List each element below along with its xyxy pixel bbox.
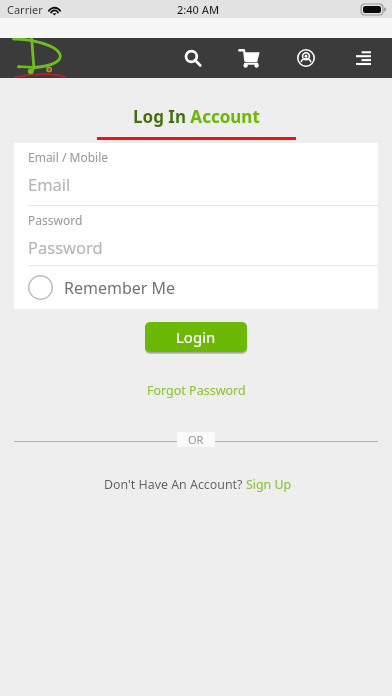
button[interactable]: Cart [230,39,268,77]
staticText: 2:40 AM [177,2,220,17]
staticText: Carrier [7,2,43,17]
button[interactable]: Menu [344,39,382,77]
staticText: Forgot Password [147,382,246,399]
staticText: Login [176,327,216,347]
staticText: Password [28,236,103,258]
button[interactable]: Account [287,39,325,77]
button[interactable]: Sign Up [246,476,292,493]
staticText: Email [28,173,71,195]
staticText: Password [28,212,83,228]
button[interactable]: Login [145,322,247,352]
staticText: Email / Mobile [28,149,109,165]
staticText: Sign Up [246,476,292,493]
staticText: Don't Have An Account? [104,476,246,493]
staticText: OR [188,432,204,447]
button[interactable]: Search [174,39,212,77]
button[interactable]: Remember Me [14,266,378,309]
staticText: Remember Me [64,277,176,299]
button[interactable]: Forgot Password [141,378,252,403]
button[interactable]: Email / Mobile [14,143,378,205]
button[interactable]: Password [14,206,378,265]
staticText: Log In Account [133,105,260,128]
